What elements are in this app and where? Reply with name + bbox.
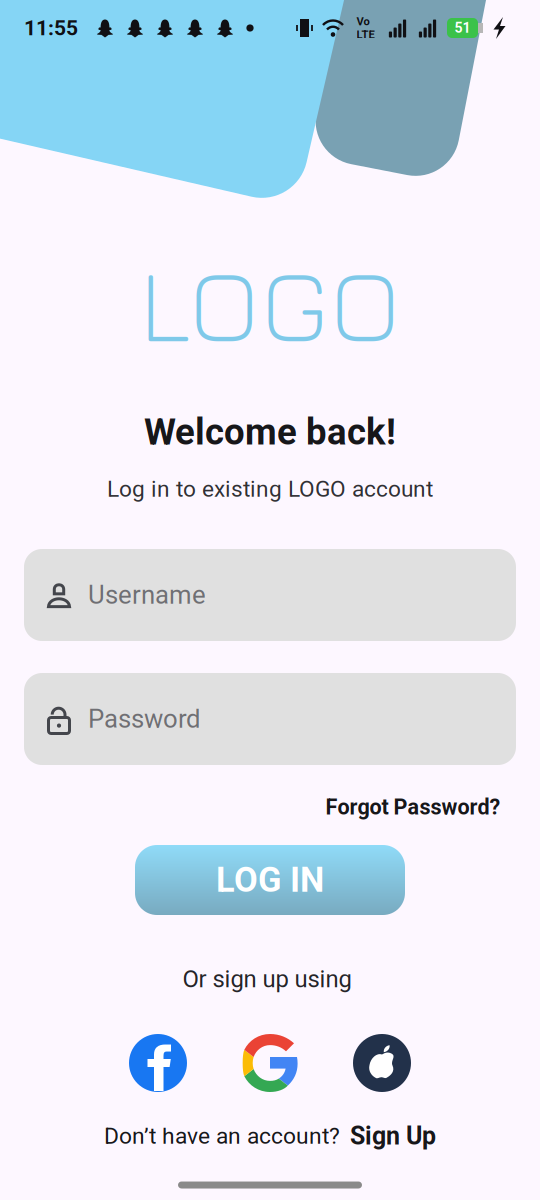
staticText: Password xyxy=(88,704,201,734)
staticText: Sign Up xyxy=(350,1121,436,1151)
button[interactable]: Sign Up xyxy=(350,1121,436,1151)
staticText: Welcome back! xyxy=(144,411,396,453)
staticText: Or sign up using xyxy=(182,965,351,993)
staticText: LTE xyxy=(356,28,374,41)
button[interactable]: Sign up with Apple xyxy=(353,1034,411,1092)
staticText: 51 xyxy=(454,20,470,36)
button[interactable]: LOG IN xyxy=(135,845,405,915)
staticText: Vo xyxy=(356,15,369,28)
staticText: LOG IN xyxy=(216,860,324,900)
staticText: Username xyxy=(88,580,206,610)
button[interactable]: Password xyxy=(24,673,516,765)
button[interactable]: Forgot Password? xyxy=(321,788,504,826)
staticText: LOGO xyxy=(139,240,401,364)
button[interactable]: Username xyxy=(24,549,516,641)
staticText: 11:55 xyxy=(24,16,78,40)
staticText: Don’t have an account? xyxy=(104,1123,340,1149)
staticText: Forgot Password? xyxy=(325,794,500,820)
staticText: Log in to existing LOGO account xyxy=(107,476,433,502)
button[interactable]: Sign up with Google xyxy=(241,1034,299,1092)
button[interactable]: Sign up with Facebook xyxy=(129,1034,187,1092)
